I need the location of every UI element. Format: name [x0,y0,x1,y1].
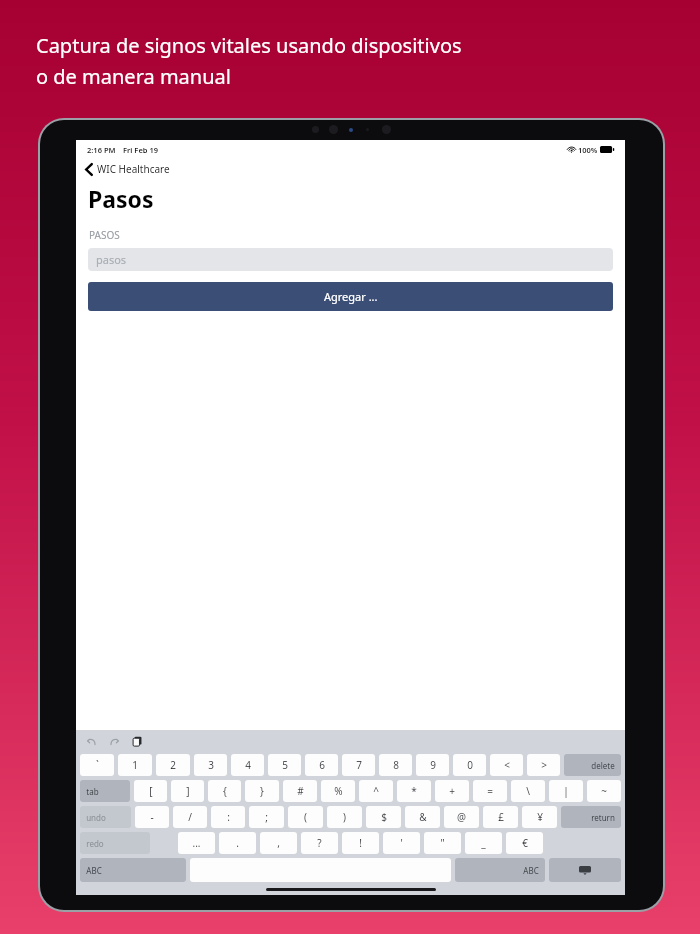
button[interactable]: < [490,754,523,776]
staticText: redo [86,838,104,849]
button[interactable]: 1 [118,754,152,776]
staticText: 0 [467,758,473,772]
button[interactable]: 0 [453,754,486,776]
staticText: € [522,836,528,850]
staticText: 4 [245,758,251,772]
button[interactable]: } [245,780,279,802]
staticText: $ [381,810,387,824]
button[interactable]: 9 [416,754,449,776]
button[interactable]: ; [249,806,284,828]
button[interactable]: ABC [455,858,545,882]
staticText: = [487,784,493,798]
staticText: ~ [601,784,607,798]
button[interactable]: ... [178,832,215,854]
button[interactable]: ` [80,754,114,776]
button[interactable]: ( [288,806,323,828]
staticText: 6 [319,758,325,772]
button[interactable]: tab [80,780,130,802]
staticText: ` [96,758,99,772]
staticText: WIC Healthcare [97,162,170,176]
button[interactable]: ^ [359,780,393,802]
button[interactable]: ABC [80,858,186,882]
button[interactable]: ] [171,780,204,802]
staticText: \ [526,784,530,798]
button[interactable]: _ [465,832,502,854]
button[interactable]: Undo [86,736,97,747]
staticText: Agregar ... [324,289,378,304]
button[interactable]: 4 [231,754,264,776]
staticText: 100% [578,145,598,155]
staticText: tab [86,786,99,797]
staticText: 2 [170,758,176,772]
button[interactable]: pasos [88,248,613,271]
button[interactable]: ~ [587,780,621,802]
button[interactable]: ' [383,832,420,854]
staticText: return [591,812,615,823]
button[interactable]: " [424,832,461,854]
staticText: # [297,784,304,798]
staticText: Pasos [88,183,154,214]
staticText: ' [400,836,403,850]
button[interactable]: £ [483,806,518,828]
button[interactable]: 5 [268,754,301,776]
button[interactable]: delete [564,754,621,776]
button[interactable]: ¥ [522,806,557,828]
button[interactable]: % [321,780,355,802]
staticText: > [541,758,547,772]
staticText: { [223,784,227,798]
staticText: - [150,810,154,824]
staticText: Captura de signos vitales usando disposi… [36,32,462,59]
button[interactable]: # [283,780,317,802]
staticText: 7 [356,758,362,772]
staticText: ? [317,836,322,850]
staticText: pasos [96,252,127,267]
staticText: | [563,784,569,798]
button[interactable]: 7 [342,754,375,776]
button[interactable]: return [561,806,621,828]
button[interactable]: 8 [379,754,412,776]
button[interactable]: > [527,754,560,776]
button[interactable]: [ [134,780,167,802]
button[interactable]: 3 [194,754,227,776]
button[interactable]: ) [327,806,362,828]
staticText: Fri Feb 19 [123,145,159,155]
button[interactable]: @ [444,806,479,828]
button[interactable]: 6 [305,754,338,776]
button[interactable]: & [405,806,440,828]
button[interactable]: redo [80,832,150,854]
button[interactable]: ! [342,832,379,854]
button[interactable]: + [435,780,469,802]
button[interactable]: Agregar ... [88,282,613,311]
button[interactable]: = [473,780,507,802]
button[interactable]: , [260,832,297,854]
staticText: ( [304,810,307,824]
button[interactable]: € [506,832,543,854]
button[interactable]: | [549,780,583,802]
button[interactable]: Hide keyboard [549,858,621,882]
button[interactable]: undo [80,806,131,828]
staticText: @ [457,810,466,824]
staticText: % [334,784,343,798]
button[interactable]: $ [366,806,401,828]
button[interactable]: Paste [132,736,143,747]
button[interactable]: : [211,806,245,828]
button[interactable]: / [173,806,207,828]
staticText: o de manera manual [36,63,231,90]
button[interactable]: - [135,806,169,828]
button[interactable]: 2 [156,754,190,776]
staticText: 3 [208,758,214,772]
button[interactable]: Back to WIC Healthcare [85,159,625,179]
staticText: 8 [393,758,399,772]
staticText: ; [265,810,268,824]
staticText: ) [343,810,346,824]
button[interactable]: \ [511,780,545,802]
button[interactable]: ? [301,832,338,854]
staticText: : [227,810,230,824]
button[interactable]: . [219,832,256,854]
staticText: / [188,810,192,824]
staticText: £ [498,810,504,824]
button[interactable]: { [208,780,241,802]
button[interactable]: * [397,780,431,802]
button[interactable]: Redo [109,736,120,747]
